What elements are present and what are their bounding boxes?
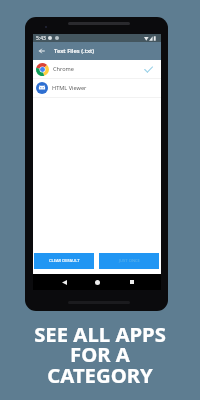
- staticText: 5:43: [36, 35, 46, 42]
- staticText: CLEAR DEFAULT: [49, 258, 80, 264]
- button[interactable]: Chrome: [33, 60, 161, 78]
- staticText: JUST ONCE: [119, 258, 140, 264]
- button[interactable]: Back: [33, 42, 50, 60]
- staticText: SEE ALL APPS FOR A CATEGORY: [34, 320, 166, 389]
- staticText: Chrome: [53, 65, 144, 73]
- staticText: Text Files (.txt): [54, 47, 95, 55]
- button[interactable]: Back: [54, 274, 74, 290]
- button[interactable]: JUST ONCE: [99, 253, 159, 269]
- button[interactable]: Home: [87, 274, 107, 290]
- button[interactable]: Recents: [122, 274, 142, 290]
- button[interactable]: HTML Viewer: [33, 79, 161, 97]
- button[interactable]: CLEAR DEFAULT: [34, 253, 94, 269]
- staticText: HTML Viewer: [52, 84, 153, 92]
